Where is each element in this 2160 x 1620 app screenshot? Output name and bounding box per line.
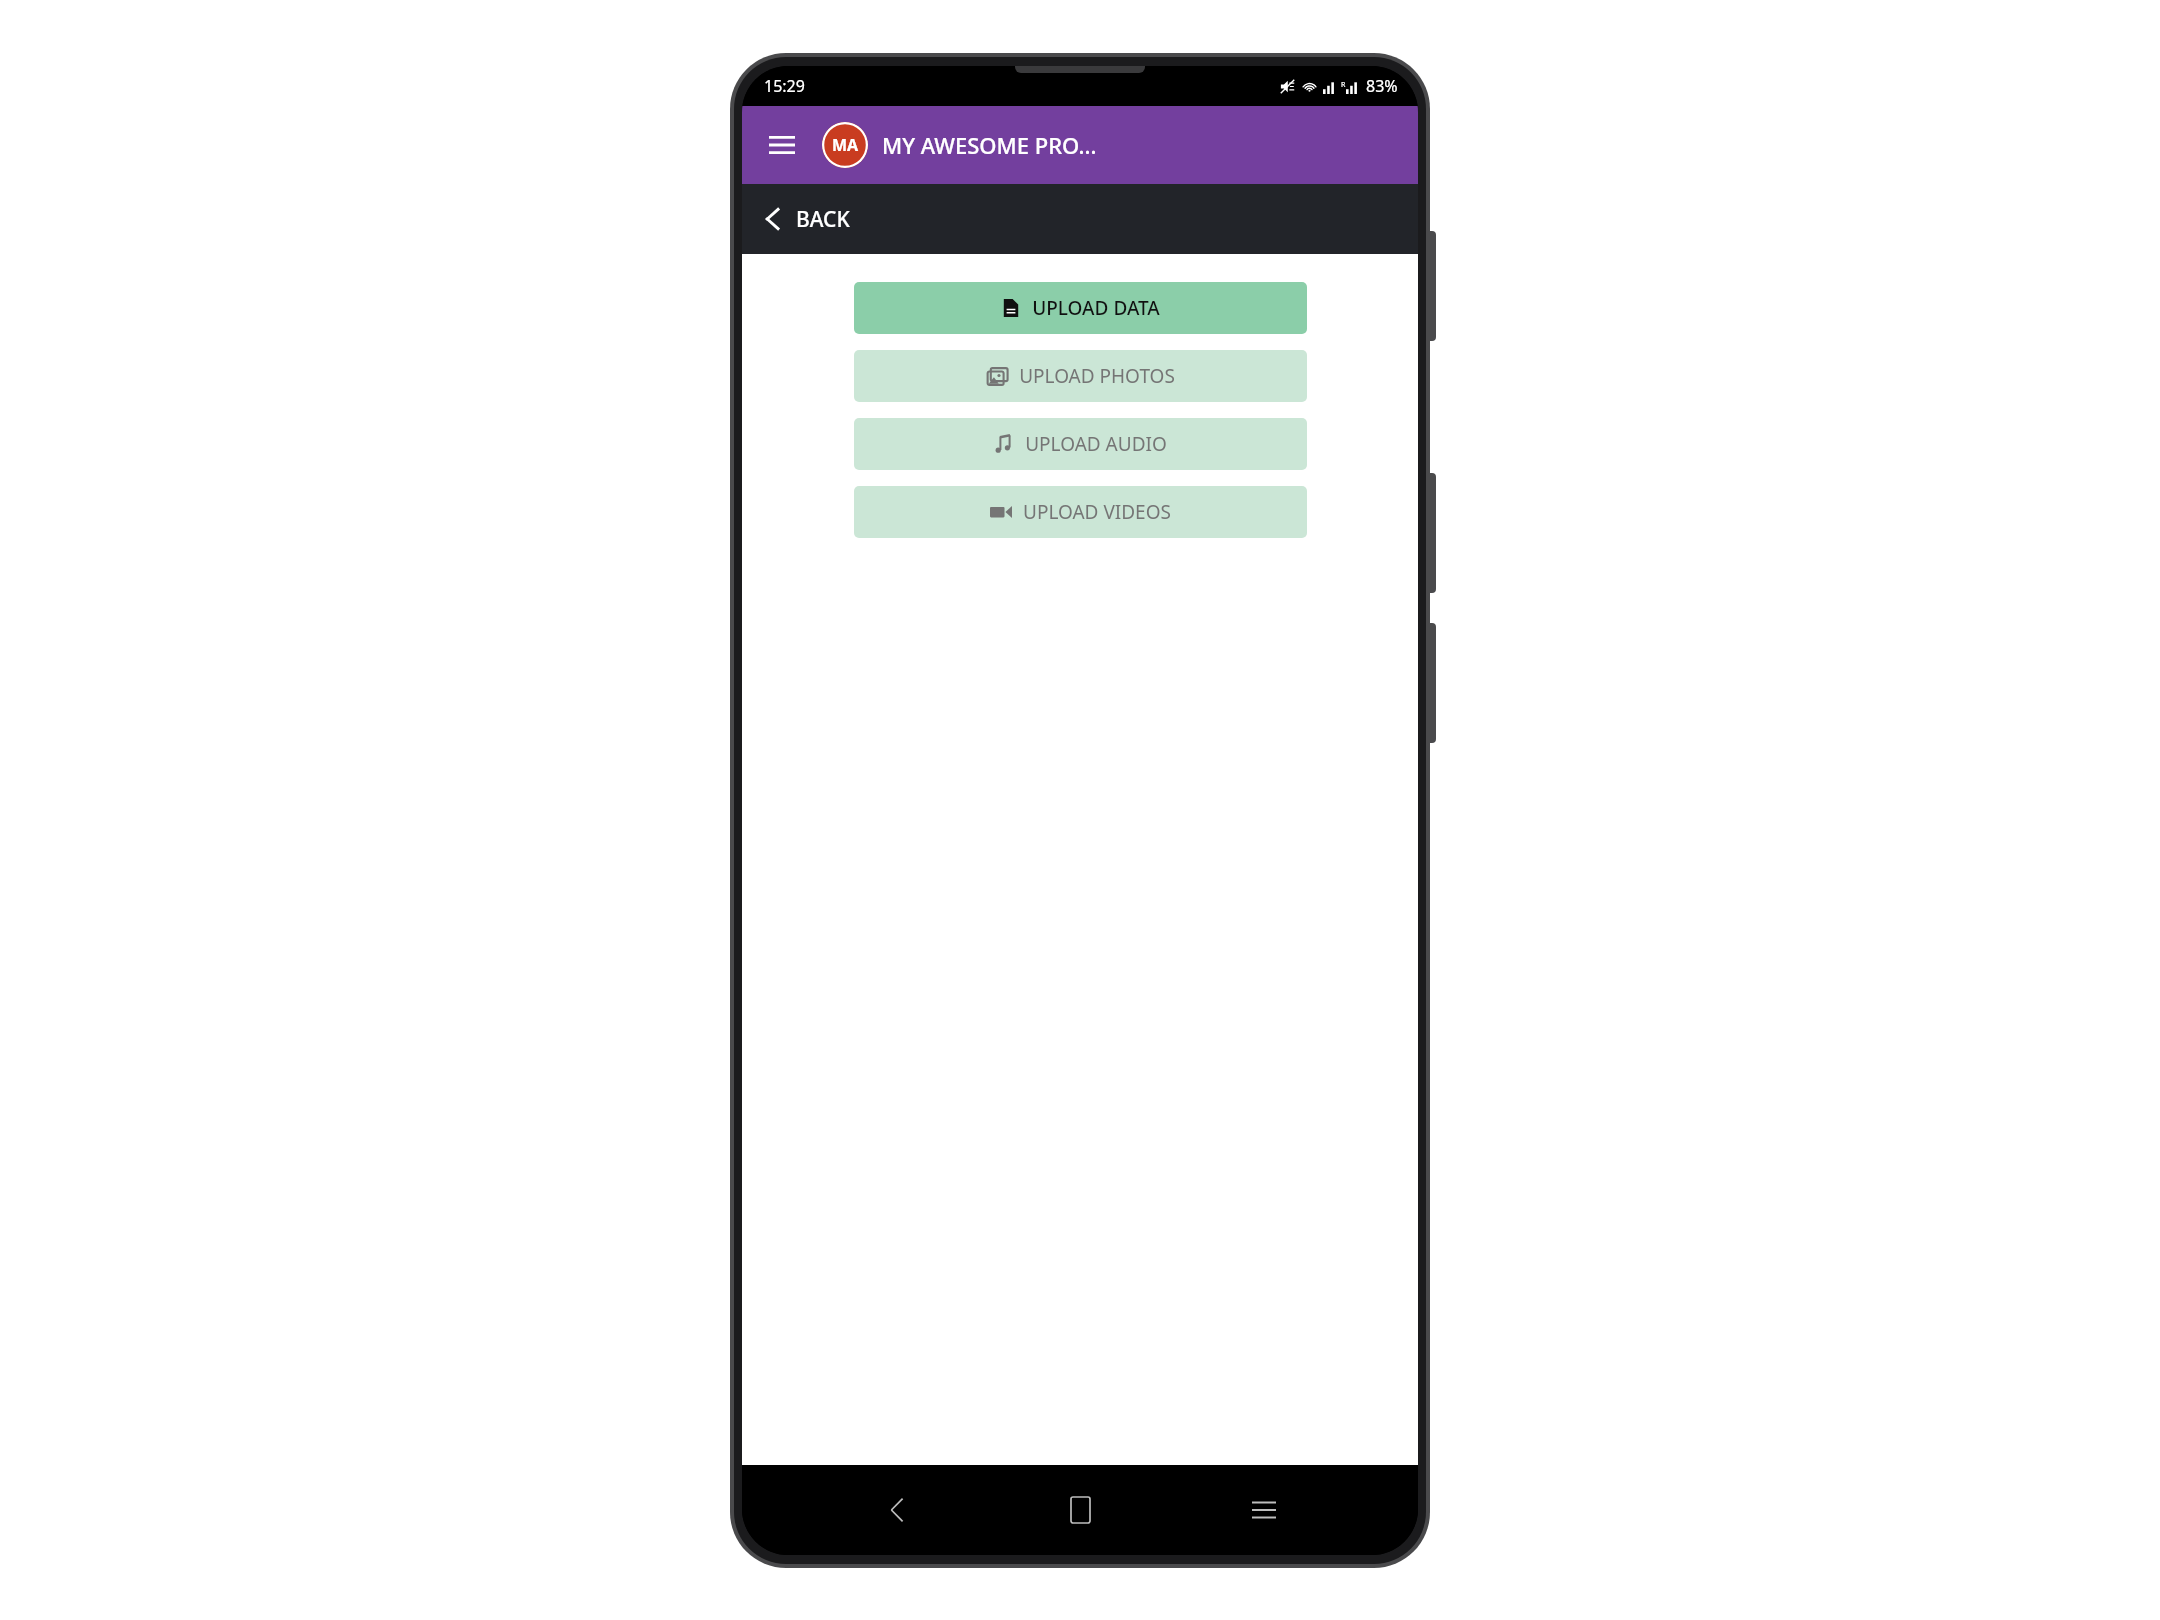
button[interactable]: UPLOAD DATA	[854, 282, 1307, 334]
button[interactable]: UPLOAD VIDEOS	[854, 486, 1307, 538]
staticText: 15:29	[764, 75, 805, 97]
staticText: MA	[832, 134, 859, 156]
button[interactable]: Back	[868, 1481, 926, 1539]
staticText: R	[1341, 80, 1346, 90]
staticText: UPLOAD DATA	[1032, 295, 1160, 321]
button[interactable]: BACK	[742, 184, 1418, 254]
button[interactable]: Home	[1051, 1481, 1109, 1539]
button[interactable]: Open navigation menu	[760, 123, 804, 167]
staticText: BACK	[796, 205, 850, 234]
button[interactable]: Recent apps	[1235, 1481, 1293, 1539]
staticText: UPLOAD PHOTOS	[1019, 363, 1175, 389]
staticText: UPLOAD AUDIO	[1025, 431, 1167, 457]
staticText: MY AWESOME PRO...	[882, 130, 1097, 160]
staticText: 83%	[1366, 75, 1398, 97]
staticText: UPLOAD VIDEOS	[1023, 499, 1171, 525]
button[interactable]: UPLOAD PHOTOS	[854, 350, 1307, 402]
button[interactable]: UPLOAD AUDIO	[854, 418, 1307, 470]
